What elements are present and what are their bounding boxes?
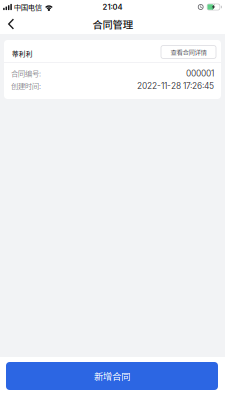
staticText: 创建时间: [11, 80, 41, 91]
button[interactable]: Back [0, 14, 23, 34]
button[interactable]: 新增合同 [6, 362, 218, 390]
staticText: 新增合同 [94, 369, 130, 383]
staticText: 中国电信 [14, 2, 42, 12]
staticText: 2022-11-28 17:26:45 [137, 81, 214, 91]
staticText: 查看合同详情 [170, 47, 206, 57]
staticText: 000001 [186, 68, 214, 78]
staticText: 21:04 [102, 2, 122, 12]
staticText: 合同编号: [11, 68, 41, 79]
button[interactable]: 查看合同详情 [161, 44, 216, 58]
staticText: 蒂利利 [12, 49, 33, 58]
staticText: 合同管理 [92, 17, 132, 31]
